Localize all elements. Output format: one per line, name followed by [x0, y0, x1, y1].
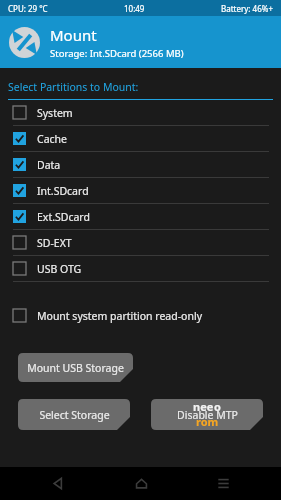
staticText: Mount — [50, 25, 97, 45]
staticText: Ext.SDcard — [37, 210, 90, 224]
button[interactable]: Int.SDcard — [0, 178, 281, 204]
button[interactable]: Disable MTP — [151, 399, 263, 430]
staticText: Select Storage — [39, 408, 110, 422]
staticText: o — [214, 399, 221, 414]
staticText: SD-EXT — [37, 236, 72, 250]
button[interactable]: Data — [0, 152, 281, 178]
button[interactable]: Ext.SDcard — [0, 204, 281, 230]
staticText: Cache — [37, 132, 67, 146]
button[interactable]: Select Storage — [18, 399, 130, 430]
staticText: Mount system partition read-only — [37, 309, 202, 323]
button[interactable]: Mount USB Storage — [18, 353, 133, 382]
staticText: Select Partitions to Mount: — [8, 80, 139, 94]
button[interactable]: Mount system partition read-only — [0, 303, 281, 328]
staticText: USB OTG — [37, 262, 82, 276]
staticText: Data — [37, 158, 61, 172]
staticText: System — [37, 106, 73, 120]
staticText: rom — [196, 414, 219, 429]
button[interactable]: Menu — [199, 467, 247, 500]
button[interactable]: Home — [117, 467, 165, 500]
staticText: nee — [193, 399, 214, 414]
button[interactable]: Back — [34, 467, 82, 500]
button[interactable]: System — [0, 100, 281, 126]
staticText: CPU: 29 °C — [8, 3, 48, 14]
staticText: 10:49 — [124, 3, 145, 14]
staticText: Int.SDcard — [37, 184, 89, 198]
staticText: Battery: 46%+ — [221, 3, 273, 14]
staticText: Disable MTP — [177, 408, 238, 422]
button[interactable]: SD-EXT — [0, 230, 281, 256]
button[interactable]: USB OTG — [0, 256, 281, 282]
button[interactable]: Cache — [0, 126, 281, 152]
staticText: Storage: Int.SDcard (2566 MB) — [50, 47, 184, 60]
staticText: Mount USB Storage — [27, 361, 124, 375]
